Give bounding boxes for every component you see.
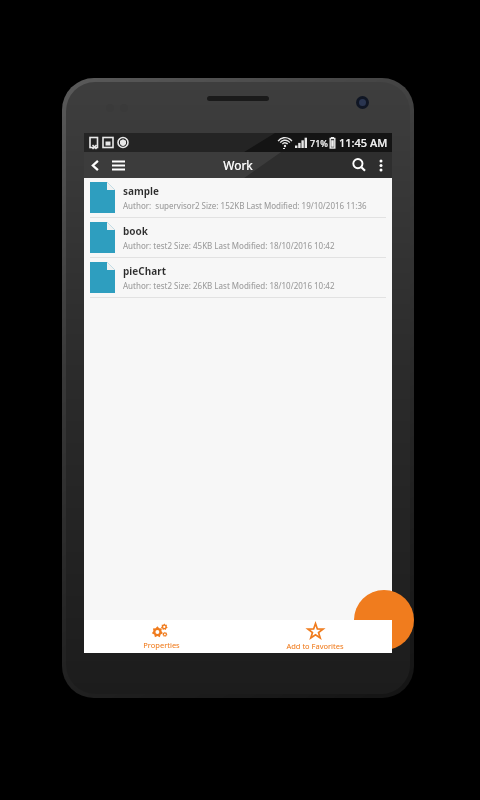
- staticText: Add to Favorites: [286, 641, 344, 651]
- button[interactable]: sample: [84, 178, 392, 218]
- button[interactable]: Menu: [106, 152, 130, 178]
- button[interactable]: Search: [346, 152, 372, 178]
- button[interactable]: book: [84, 218, 392, 258]
- staticText: 11:45 AM: [339, 135, 388, 150]
- staticText: sample: [123, 184, 160, 198]
- staticText: Author: test2 Size: 45KB Last Modified: …: [123, 240, 335, 251]
- staticText: Properties: [143, 640, 180, 650]
- staticText: book: [123, 224, 149, 238]
- staticText: Work: [223, 157, 253, 173]
- button[interactable]: pieChart: [84, 258, 392, 298]
- button[interactable]: Add: [354, 590, 414, 650]
- button[interactable]: Properties: [84, 620, 238, 653]
- staticText: 71%: [310, 137, 328, 149]
- staticText: Author: supervisor2 Size: 152KB Last Mod…: [123, 200, 367, 211]
- staticText: Author: test2 Size: 26KB Last Modified: …: [123, 280, 335, 291]
- button[interactable]: More options: [372, 152, 390, 178]
- button[interactable]: Back: [84, 152, 106, 178]
- button[interactable]: Add to Favorites: [238, 620, 392, 653]
- staticText: pieChart: [123, 264, 166, 278]
